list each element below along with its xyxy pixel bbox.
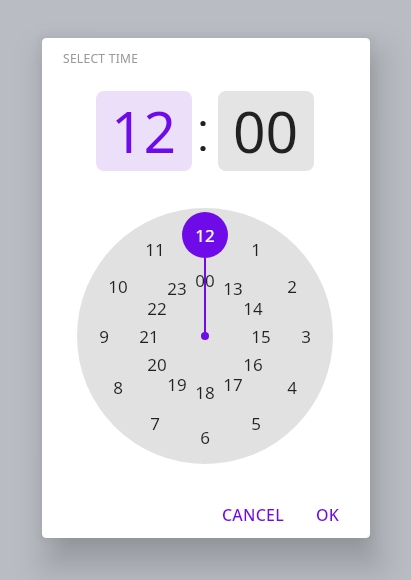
button[interactable]: 15	[245, 320, 277, 352]
button[interactable]: 3	[290, 320, 322, 352]
button[interactable]: 19	[161, 368, 193, 400]
staticText: 13	[223, 277, 243, 300]
staticText: 14	[243, 297, 263, 320]
staticText: CANCEL	[222, 504, 284, 526]
button[interactable]: 10	[102, 270, 134, 302]
button[interactable]: 23	[161, 272, 193, 304]
button[interactable]: 11	[139, 233, 171, 265]
staticText: 5	[251, 412, 261, 435]
staticText: SELECT TIME	[63, 50, 139, 66]
staticText: 20	[147, 353, 167, 376]
button[interactable]: 16	[237, 348, 269, 380]
staticText: 00	[233, 92, 299, 170]
button[interactable]: OK	[304, 497, 352, 533]
staticText: 17	[223, 373, 243, 396]
button[interactable]: 8	[102, 371, 134, 403]
staticText: 21	[139, 325, 159, 348]
button[interactable]: 13	[217, 272, 249, 304]
staticText: 7	[150, 412, 160, 435]
button[interactable]: 22	[141, 292, 173, 324]
button[interactable]: 4	[276, 371, 308, 403]
button[interactable]: 12	[189, 219, 221, 251]
button[interactable]: 9	[88, 320, 120, 352]
staticText: 12	[195, 224, 215, 247]
staticText: 11	[145, 238, 165, 261]
staticText: 10	[108, 275, 128, 298]
staticText: 8	[113, 376, 123, 399]
button[interactable]: 12	[96, 91, 192, 171]
button[interactable]: 7	[139, 407, 171, 439]
staticText: 6	[200, 426, 210, 449]
staticText: 18	[195, 381, 215, 404]
staticText: 19	[167, 373, 187, 396]
button[interactable]: 17	[217, 368, 249, 400]
button[interactable]: 20	[141, 348, 173, 380]
staticText: 4	[287, 376, 297, 399]
button[interactable]: 1	[240, 233, 272, 265]
staticText: 16	[243, 353, 263, 376]
staticText: 12	[111, 92, 177, 170]
button[interactable]: 14	[237, 292, 269, 324]
staticText: 2	[287, 275, 297, 298]
staticText: OK	[316, 504, 340, 526]
staticText: 23	[167, 277, 187, 300]
staticText: 3	[301, 325, 311, 348]
button[interactable]: 00	[189, 264, 221, 296]
button[interactable]: 18	[189, 376, 221, 408]
staticText: 9	[99, 325, 109, 348]
staticText: 1	[251, 238, 261, 261]
button[interactable]: 21	[133, 320, 165, 352]
staticText: 00	[195, 269, 215, 292]
staticText: 22	[147, 297, 167, 320]
button[interactable]: CANCEL	[211, 497, 294, 533]
button[interactable]: 1	[77, 208, 333, 464]
button[interactable]: 5	[240, 407, 272, 439]
button[interactable]: 00	[218, 91, 314, 171]
button[interactable]: 6	[189, 421, 221, 453]
staticText: 15	[251, 325, 271, 348]
button[interactable]: 2	[276, 270, 308, 302]
